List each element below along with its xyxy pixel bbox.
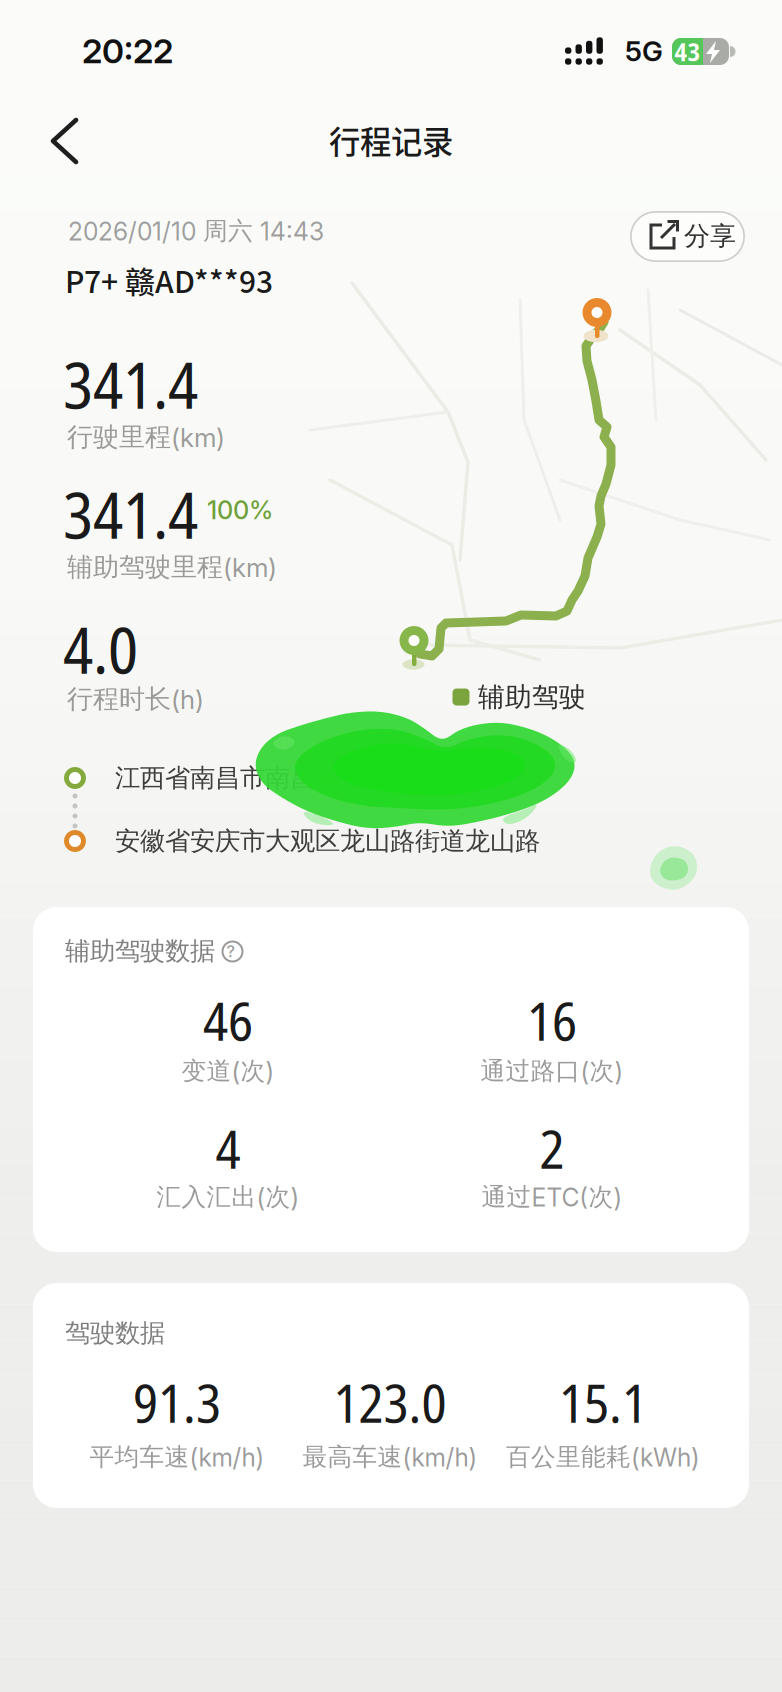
staticText: 江西省南昌市南昌县小蓝经济开发区 [115,762,515,794]
staticText: 通过ETC(次) [481,1181,622,1213]
staticText: 最高车速(km/h) [302,1441,477,1473]
staticText: 安徽省安庆市大观区龙山路街道龙山路 [115,825,540,857]
staticText: 分享 [684,220,736,252]
staticText: 46 [203,984,253,1056]
staticText: 2026/01/10 周六 14:43 [68,215,324,247]
staticText: 341.4 [63,340,198,428]
staticText: 变道(次) [181,1055,274,1087]
staticText: 驾驶数据 [65,1317,165,1349]
staticText: 百公里能耗(kWh) [506,1441,700,1473]
staticText: ? [226,942,234,961]
staticText: 5G [625,34,663,68]
staticText: 20:22 [82,30,173,71]
staticText: 2 [539,1112,564,1184]
staticText: 91.3 [133,1366,221,1438]
staticText: 辅助驾驶数据 [65,935,215,967]
staticText: 汇入汇出(次) [156,1181,299,1213]
staticText: 43 [674,34,700,69]
staticText: 4 [215,1112,240,1184]
staticText: 行驶里程(km) [67,421,225,453]
staticText: 16 [527,984,577,1056]
staticText: 341.4 [63,470,198,558]
staticText: 行程时长(h) [67,683,204,715]
staticText: 123.0 [333,1366,446,1438]
staticText: 通过路口(次) [480,1055,623,1087]
staticText: 行程记录 [329,117,453,163]
staticText: 15.1 [559,1366,647,1438]
staticText: 4.0 [63,605,138,693]
staticText: 辅助驾驶 [478,680,586,714]
staticText: P7+ 赣AD***93 [65,258,273,302]
staticText: 辅助驾驶里程(km) [67,551,277,583]
staticText: 100% [207,495,273,525]
staticText: 平均车速(km/h) [89,1441,264,1473]
